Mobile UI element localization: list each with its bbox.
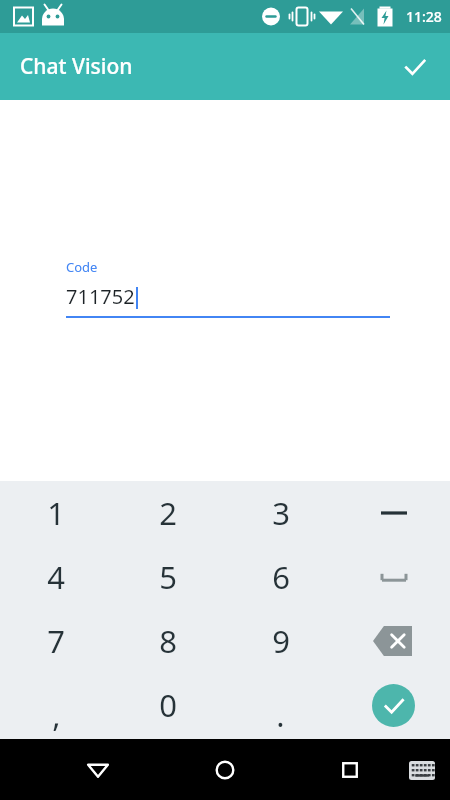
staticText: 711752 [66, 283, 135, 310]
button[interactable]: . [224, 673, 337, 737]
button[interactable]: 2 [112, 481, 224, 545]
staticText: 6 [272, 556, 290, 598]
staticText: Chat Vision [20, 52, 133, 81]
button[interactable]: Home [201, 746, 249, 794]
staticText: Code [66, 258, 98, 276]
button[interactable]: Enter [337, 673, 450, 737]
staticText: 4 [47, 556, 65, 598]
button[interactable]: Recents [326, 746, 374, 794]
button[interactable]: 4 [0, 545, 112, 609]
button[interactable]: 711752 [66, 283, 390, 310]
button[interactable]: 5 [112, 545, 224, 609]
button[interactable]: Switch keyboard [402, 750, 442, 790]
staticText: , [52, 694, 61, 736]
staticText: 2 [159, 492, 177, 534]
button[interactable]: Backspace [337, 609, 450, 673]
staticText: 8 [159, 620, 177, 662]
staticText: 7 [47, 620, 65, 662]
staticText: 0 [159, 684, 177, 726]
button[interactable]: Space [337, 545, 450, 609]
staticText: . [276, 694, 285, 736]
staticText: 5 [159, 556, 177, 598]
staticText: 9 [272, 620, 290, 662]
button[interactable]: 1 [0, 481, 112, 545]
button[interactable]: 0 [112, 673, 224, 737]
button[interactable]: , [0, 673, 112, 737]
button[interactable]: Back [74, 746, 122, 794]
button[interactable]: 6 [224, 545, 337, 609]
button[interactable]: Confirm [392, 44, 438, 90]
staticText: 1 [47, 492, 65, 534]
button[interactable]: Minus [337, 481, 450, 545]
button[interactable]: 8 [112, 609, 224, 673]
button[interactable]: 9 [224, 609, 337, 673]
staticText: 3 [272, 492, 290, 534]
button[interactable]: 3 [224, 481, 337, 545]
staticText: 11:28 [406, 7, 442, 26]
button[interactable]: 7 [0, 609, 112, 673]
